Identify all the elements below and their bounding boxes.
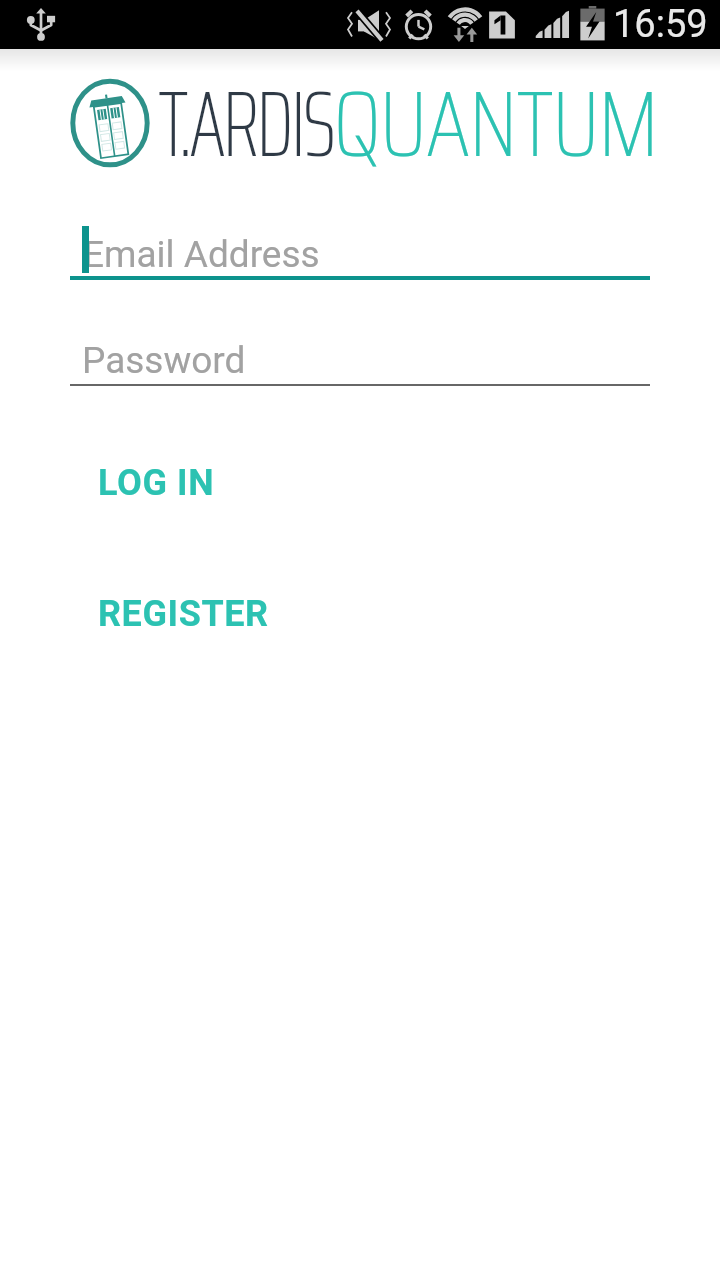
staticText: Password (82, 339, 246, 382)
staticText: T.ARDIS (158, 52, 333, 197)
button[interactable]: Email Address input field (70, 222, 650, 280)
button[interactable]: Password input field (70, 330, 650, 386)
button[interactable]: LOG IN (81, 454, 232, 512)
staticText: LOG IN (98, 462, 215, 504)
staticText: 16:59 (613, 2, 708, 47)
staticText: REGISTER (98, 593, 269, 635)
staticText: QUANTUM (333, 52, 658, 197)
button[interactable]: REGISTER (81, 585, 286, 643)
staticText: Email Address (83, 233, 320, 276)
